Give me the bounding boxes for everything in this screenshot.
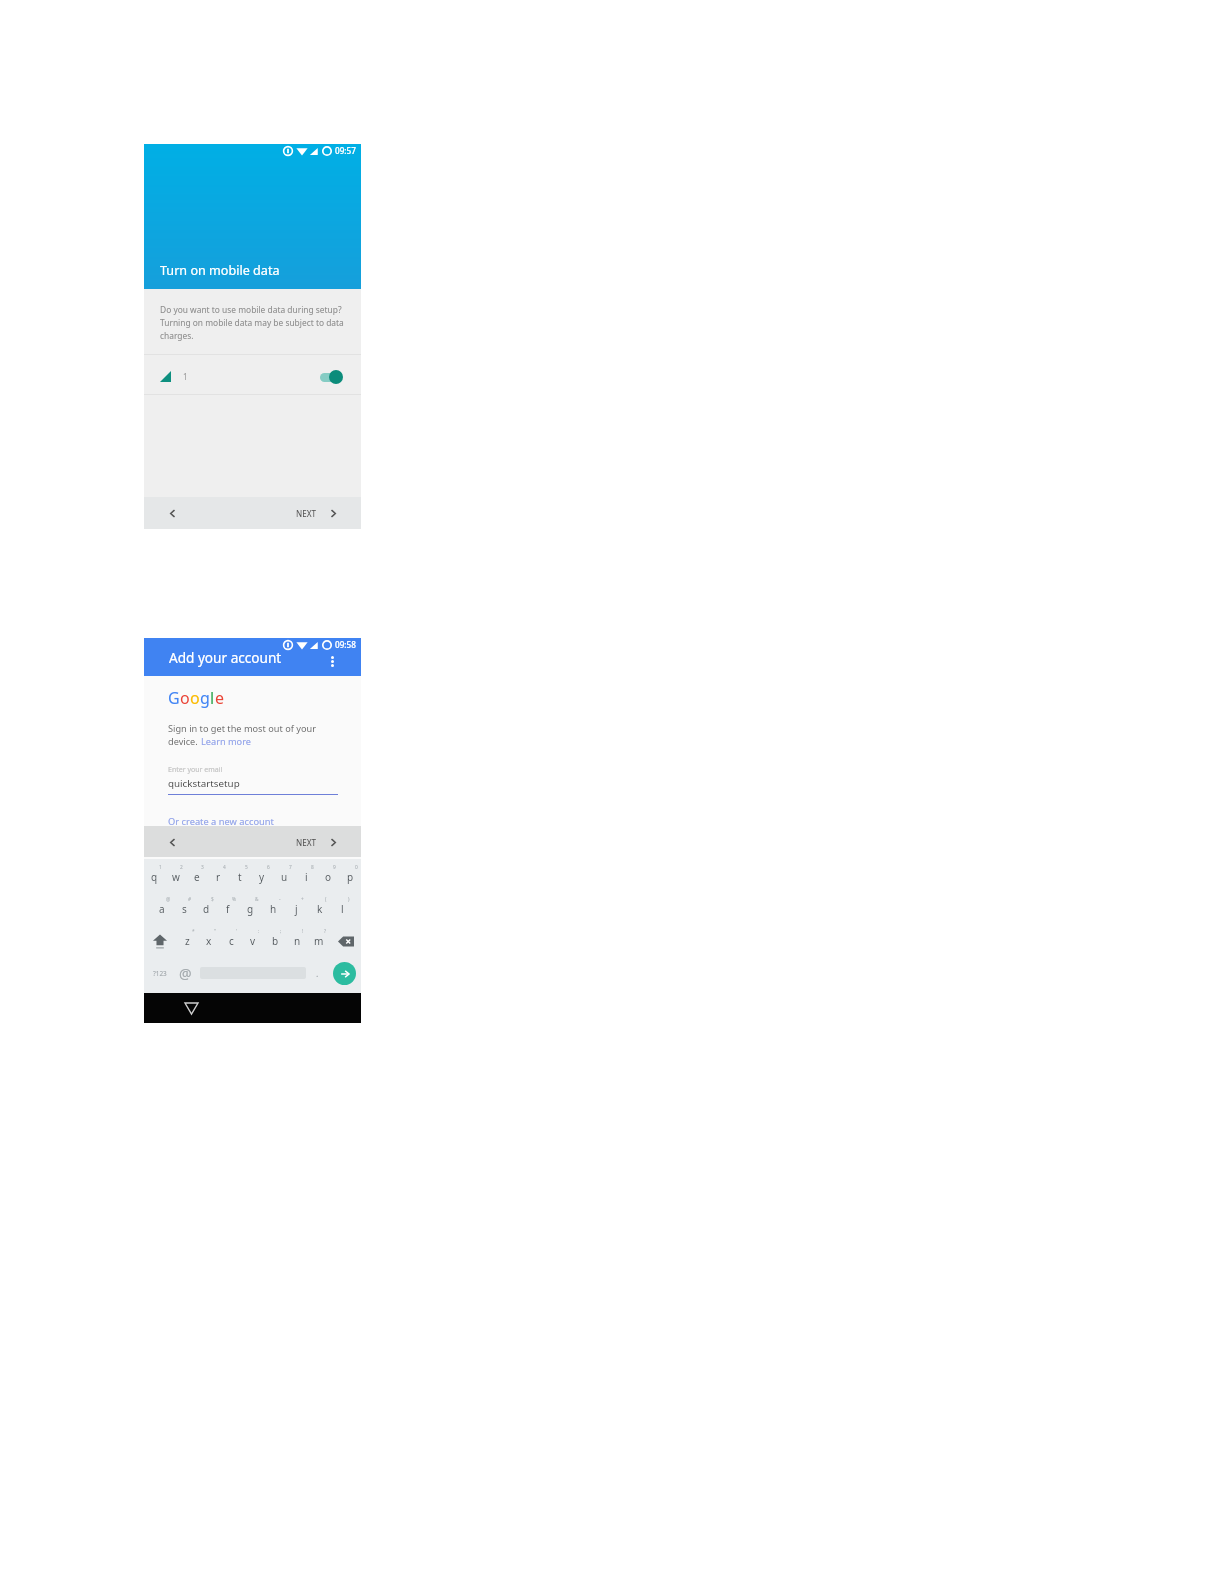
staticText: @ — [179, 964, 192, 983]
staticText: 6 — [267, 864, 270, 871]
staticText: q — [151, 870, 158, 884]
staticText: 9 — [333, 864, 336, 871]
button[interactable]: 9 — [317, 861, 339, 893]
staticText: 3 — [201, 864, 204, 871]
button[interactable]: NEXT — [294, 835, 342, 849]
button[interactable]: 7 — [273, 861, 295, 893]
button[interactable]: Backspace — [330, 925, 361, 957]
button[interactable]: * — [176, 925, 198, 957]
staticText: 7 — [289, 864, 292, 871]
staticText: + — [301, 896, 304, 903]
button[interactable]: ? — [308, 925, 330, 957]
staticText: u — [281, 870, 288, 884]
staticText: y — [259, 870, 265, 884]
staticText: $ — [211, 896, 214, 903]
staticText: 1 — [159, 864, 162, 871]
staticText: h — [270, 902, 277, 916]
staticText: k — [317, 902, 323, 916]
button[interactable]: Back — [164, 505, 180, 521]
staticText: b — [272, 934, 279, 948]
button[interactable]: - — [262, 893, 285, 925]
button[interactable]: 3 — [186, 861, 207, 893]
button[interactable]: Or create a new account — [168, 815, 274, 828]
staticText: ?123 — [153, 969, 167, 978]
button[interactable]: 0 — [339, 861, 361, 893]
staticText: 5 — [245, 864, 248, 871]
staticText: l — [341, 902, 344, 916]
staticText: 4 — [223, 864, 226, 871]
button[interactable]: ) — [331, 893, 354, 925]
staticText: r — [216, 870, 221, 884]
button[interactable]: 8 — [295, 861, 317, 893]
staticText: ; — [280, 928, 282, 935]
staticText: Sign in to get the most out of your — [168, 722, 316, 735]
staticText: NEXT — [296, 508, 317, 519]
staticText: o — [325, 870, 332, 884]
staticText: n — [294, 934, 301, 948]
button[interactable]: + — [285, 893, 308, 925]
staticText: l — [210, 687, 215, 709]
button[interactable]: ; — [264, 925, 286, 957]
staticText: e — [194, 870, 200, 884]
button[interactable]: Back — [164, 834, 180, 850]
staticText: . — [316, 967, 319, 979]
button[interactable]: Symbols — [148, 957, 172, 989]
staticText: w — [172, 870, 180, 884]
button[interactable]: ! — [286, 925, 308, 957]
button[interactable]: At sign — [175, 957, 195, 989]
staticText: m — [314, 934, 324, 948]
staticText: z — [185, 934, 190, 948]
button[interactable]: ( — [308, 893, 331, 925]
staticText: p — [347, 870, 354, 884]
button[interactable]: Go — [333, 962, 356, 985]
staticText: ) — [348, 896, 350, 903]
staticText: o — [180, 687, 190, 709]
staticText: o — [190, 687, 200, 709]
staticText: ' — [236, 928, 238, 935]
staticText: : — [258, 928, 260, 935]
button[interactable]: % — [217, 893, 239, 925]
staticText: Enter your email — [168, 765, 223, 775]
staticText: e — [215, 687, 225, 709]
staticText: s — [182, 902, 187, 916]
staticText: ? — [324, 928, 327, 935]
staticText: j — [295, 902, 298, 916]
staticText: f — [226, 902, 230, 916]
button[interactable]: # — [173, 893, 195, 925]
button[interactable]: 6 — [251, 861, 273, 893]
button[interactable]: NEXT — [294, 506, 342, 520]
staticText: g — [247, 902, 254, 916]
button[interactable]: Shift — [144, 925, 176, 957]
staticText: x — [206, 934, 212, 948]
button[interactable]: : — [242, 925, 264, 957]
staticText: NEXT — [296, 837, 317, 848]
staticText: 8 — [311, 864, 314, 871]
staticText: ( — [325, 896, 327, 903]
staticText: - — [279, 896, 281, 903]
button[interactable]: ' — [220, 925, 242, 957]
staticText: # — [188, 896, 192, 903]
button[interactable]: " — [198, 925, 220, 957]
staticText: Do you want to use mobile data during se… — [160, 304, 356, 341]
staticText: i — [305, 870, 308, 884]
button[interactable]: $ — [195, 893, 217, 925]
button[interactable]: @ — [151, 893, 173, 925]
button[interactable]: More options — [324, 653, 340, 669]
staticText: 1 — [183, 371, 188, 382]
staticText: " — [214, 928, 216, 935]
button[interactable]: 1 — [144, 358, 361, 395]
staticText: t — [238, 870, 242, 884]
staticText: d — [203, 902, 210, 916]
staticText: quickstartsetup — [168, 777, 240, 790]
button[interactable]: 2 — [165, 861, 186, 893]
button[interactable]: 1 — [144, 861, 165, 893]
staticText: & — [255, 896, 259, 903]
button[interactable]: Learn more — [201, 735, 251, 748]
button[interactable]: Back — [184, 1001, 198, 1015]
staticText: g — [200, 687, 210, 709]
button[interactable]: & — [239, 893, 262, 925]
button[interactable]: 4 — [207, 861, 229, 893]
button[interactable]: 5 — [229, 861, 251, 893]
